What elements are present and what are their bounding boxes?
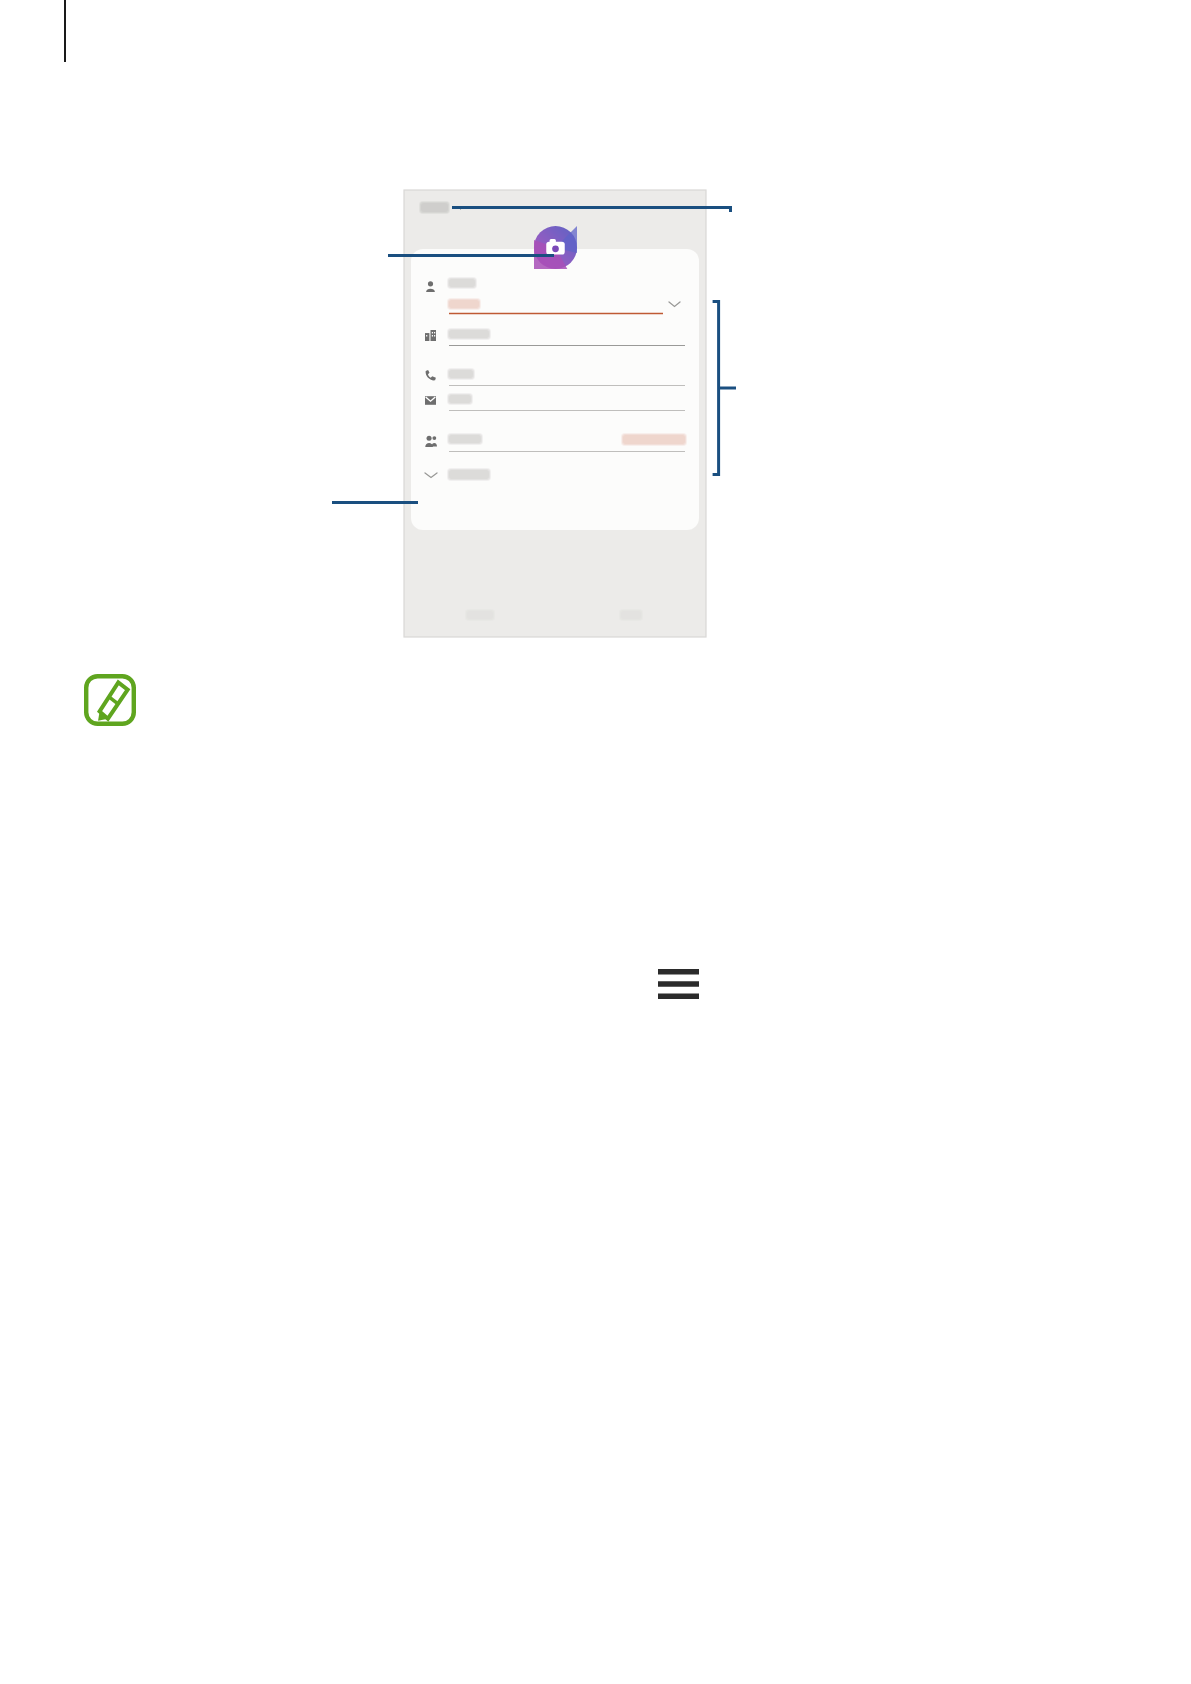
button[interactable] bbox=[425, 330, 685, 346]
button[interactable] bbox=[425, 279, 685, 314]
button[interactable] bbox=[425, 370, 685, 386]
button[interactable]: Menu bbox=[615, 936, 741, 1032]
button[interactable] bbox=[425, 470, 685, 479]
button[interactable]: Change profile picture bbox=[534, 226, 577, 269]
button[interactable] bbox=[425, 435, 685, 452]
button[interactable] bbox=[404, 190, 706, 224]
button[interactable] bbox=[425, 395, 685, 411]
